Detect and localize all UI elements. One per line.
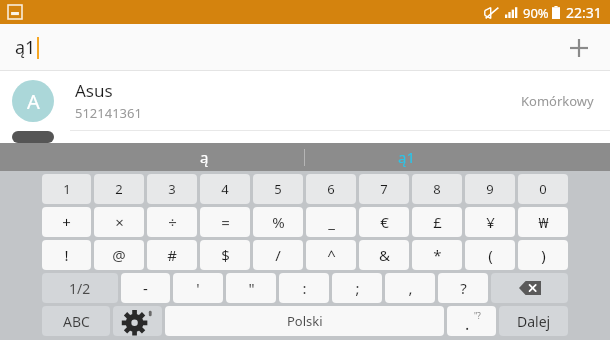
staticText: " xyxy=(248,278,255,298)
button[interactable]: - xyxy=(121,273,170,303)
staticText: / xyxy=(275,245,281,265)
staticText: - xyxy=(143,278,148,298)
button[interactable]: $ xyxy=(200,240,250,270)
staticText: 90% xyxy=(523,4,549,22)
button[interactable]: " xyxy=(226,273,276,303)
staticText: 7 xyxy=(380,180,388,198)
staticText: : xyxy=(302,278,307,298)
staticText: $ xyxy=(221,245,230,265)
staticText: ? xyxy=(460,278,467,298)
staticText: 0 xyxy=(539,180,547,198)
staticText: ÷ xyxy=(168,212,177,232)
staticText: ) xyxy=(541,245,546,265)
button[interactable]: Dalej xyxy=(499,306,568,336)
button[interactable]: ¥ xyxy=(465,207,515,237)
button[interactable]: 5 xyxy=(253,174,303,204)
button[interactable]: + xyxy=(42,207,91,237)
staticText: # xyxy=(167,245,177,265)
staticText: 4 xyxy=(221,180,229,198)
staticText: ABC xyxy=(63,312,90,331)
staticText: ' xyxy=(196,278,200,298)
staticText: _ xyxy=(328,212,335,232)
staticText: 3 xyxy=(168,180,176,198)
button[interactable]: % xyxy=(253,207,303,237)
staticText: 8 xyxy=(433,180,441,198)
staticText: + xyxy=(62,212,71,232)
button[interactable]: ( xyxy=(465,240,515,270)
staticText: ; xyxy=(355,278,360,298)
staticText: = xyxy=(221,212,230,232)
button[interactable]: _ xyxy=(306,207,356,237)
staticText: ¥ xyxy=(486,212,495,232)
button[interactable]: × xyxy=(94,207,144,237)
button[interactable]: Polski xyxy=(165,306,444,336)
button[interactable]: # xyxy=(147,240,197,270)
staticText: ^ xyxy=(327,245,336,265)
button[interactable]: 4 xyxy=(200,174,250,204)
staticText: "? xyxy=(474,310,481,321)
button[interactable]: Add contact xyxy=(562,31,596,65)
button[interactable]: 1/2 xyxy=(42,273,118,303)
staticText: ( xyxy=(488,245,493,265)
staticText: ₩ xyxy=(538,212,549,232)
button[interactable]: Settings xyxy=(113,306,162,336)
button[interactable]: ? xyxy=(438,273,488,303)
button[interactable]: 2 xyxy=(94,174,144,204)
staticText: £ xyxy=(433,212,442,232)
button[interactable]: ABC xyxy=(42,306,110,336)
staticText: Komórkowy xyxy=(521,92,594,110)
button[interactable]: ' xyxy=(173,273,223,303)
button[interactable]: ^ xyxy=(306,240,356,270)
staticText: Asus xyxy=(75,79,113,102)
button[interactable]: 7 xyxy=(359,174,409,204)
staticText: 1/2 xyxy=(69,279,91,298)
staticText: 9 xyxy=(486,180,494,198)
staticText: , xyxy=(408,278,413,298)
button[interactable]: A xyxy=(0,71,610,130)
staticText: 6 xyxy=(327,180,335,198)
staticText: 1 xyxy=(63,180,71,198)
button[interactable]: ₩ xyxy=(518,207,568,237)
staticText: Dalej xyxy=(517,312,551,331)
staticText: * xyxy=(433,245,442,265)
button[interactable]: 9 xyxy=(465,174,515,204)
staticText: ą1 xyxy=(15,35,36,60)
button[interactable]: € xyxy=(359,207,409,237)
button[interactable]: ) xyxy=(518,240,568,270)
button[interactable]: ÷ xyxy=(147,207,197,237)
staticText: ! xyxy=(64,245,69,265)
button[interactable]: : xyxy=(279,273,329,303)
staticText: ą1 xyxy=(398,147,415,167)
button[interactable]: / xyxy=(253,240,303,270)
staticText: A xyxy=(27,88,40,115)
staticText: 5 xyxy=(274,180,282,198)
staticText: Polski xyxy=(287,312,323,330)
button[interactable]: 3 xyxy=(147,174,197,204)
staticText: @ xyxy=(112,245,126,265)
staticText: € xyxy=(380,212,389,232)
staticText: & xyxy=(379,245,390,265)
button[interactable]: ; xyxy=(332,273,382,303)
button[interactable]: 6 xyxy=(306,174,356,204)
button[interactable]: £ xyxy=(412,207,462,237)
staticText: × xyxy=(115,212,124,232)
staticText: % xyxy=(272,212,285,232)
button[interactable]: ą1 xyxy=(0,24,610,71)
button[interactable]: 8 xyxy=(412,174,462,204)
staticText: 512141361 xyxy=(75,104,142,122)
button[interactable]: 1 xyxy=(42,174,91,204)
staticText: . xyxy=(465,313,470,335)
staticText: 2 xyxy=(115,180,123,198)
staticText: ą xyxy=(200,147,209,167)
button[interactable]: Backspace xyxy=(491,273,568,303)
button[interactable]: ! xyxy=(42,240,91,270)
button[interactable]: @ xyxy=(94,240,144,270)
button[interactable]: 0 xyxy=(518,174,568,204)
staticText: 22:31 xyxy=(566,3,602,22)
button[interactable]: & xyxy=(359,240,409,270)
button[interactable]: = xyxy=(200,207,250,237)
button[interactable]: * xyxy=(412,240,462,270)
button[interactable]: . xyxy=(447,306,496,336)
button[interactable]: , xyxy=(385,273,435,303)
